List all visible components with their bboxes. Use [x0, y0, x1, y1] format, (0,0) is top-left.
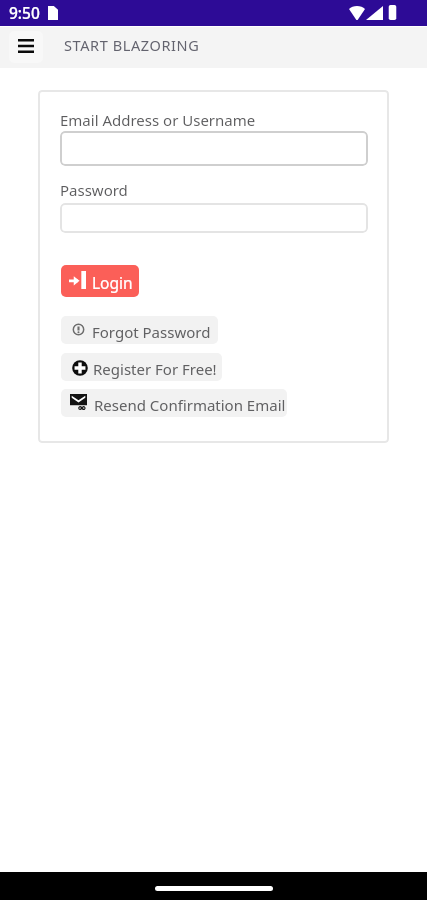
- staticText: Register For Free!: [93, 359, 217, 379]
- button[interactable]: Login: [61, 265, 139, 297]
- staticText: Email Address or Username: [60, 110, 256, 130]
- button[interactable]: Resend Confirmation Email: [61, 389, 287, 417]
- staticText: 9:50: [9, 2, 40, 23]
- staticText: Password: [60, 180, 128, 200]
- button[interactable]: Password input: [60, 203, 368, 233]
- button[interactable]: Forgot Password: [61, 316, 218, 344]
- button[interactable]: Register For Free!: [61, 353, 222, 381]
- button[interactable]: Open navigation menu: [9, 31, 43, 63]
- staticText: START BLAZORING: [64, 35, 200, 55]
- staticText: Resend Confirmation Email: [94, 395, 286, 415]
- staticText: Forgot Password: [92, 322, 211, 342]
- staticText: Login: [92, 272, 133, 293]
- button[interactable]: Email Address or Username input: [60, 131, 368, 166]
